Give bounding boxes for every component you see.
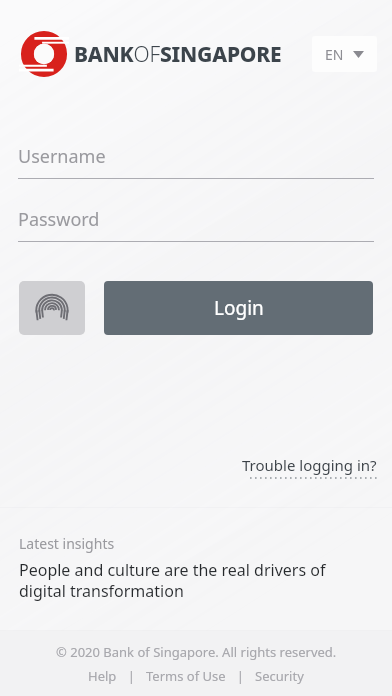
staticText: Trouble logging in?	[242, 455, 377, 475]
staticText: Help	[88, 667, 117, 685]
staticText: Terms of Use	[146, 667, 226, 685]
button[interactable]: BANKOFSINGAPORE	[20, 30, 282, 78]
button[interactable]: Login	[104, 281, 373, 335]
button[interactable]: Username	[0, 144, 392, 179]
staticText: Security	[255, 667, 304, 685]
staticText: Username	[18, 144, 106, 169]
button[interactable]: Select language	[312, 36, 377, 72]
staticText: Login	[214, 295, 264, 321]
staticText: Latest insights	[19, 534, 115, 553]
button[interactable]: Password	[0, 207, 392, 242]
button[interactable]: Security	[251, 666, 308, 686]
staticText: |	[121, 667, 142, 685]
staticText: © 2020 Bank of Singapore. All rights res…	[56, 643, 337, 661]
button[interactable]: Help	[84, 666, 121, 686]
staticText: |	[230, 667, 251, 685]
staticText: BANKOFSINGAPORE	[74, 40, 282, 69]
button[interactable]: Trouble logging in?	[242, 455, 377, 479]
button[interactable]: Latest insights	[0, 534, 392, 602]
staticText: People and culture are the real drivers …	[19, 559, 374, 602]
staticText: Password	[18, 207, 100, 232]
staticText: EN	[325, 45, 344, 64]
button[interactable]: Terms of Use	[142, 666, 230, 686]
button[interactable]: Login with fingerprint	[19, 281, 85, 335]
